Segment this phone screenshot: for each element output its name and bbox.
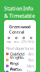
- staticText: Lifts: [21, 40, 26, 44]
- staticText: 9m: [28, 57, 34, 63]
- staticText: Map: [6, 40, 11, 44]
- staticText: 14m: [26, 63, 34, 69]
- staticText: Kings Ave: [10, 61, 19, 71]
- button[interactable]: Oakfield: [4, 51, 36, 57]
- button[interactable]: Harbour: [4, 69, 36, 72]
- staticText: Harbour: [10, 67, 22, 72]
- staticText: Brighton: [10, 55, 24, 65]
- button[interactable]: Map: [5, 37, 12, 44]
- staticText: Greenwood Central: [9, 24, 31, 35]
- staticText: Next departures: [6, 46, 34, 51]
- button[interactable]: Brighton: [4, 57, 36, 63]
- button[interactable]: Kings Ave: [4, 63, 36, 69]
- staticText: Oakfield: [10, 51, 24, 57]
- staticText: 21m: [26, 69, 34, 72]
- staticText: Station Info: [4, 5, 33, 12]
- staticText: & Timetable: [4, 12, 35, 19]
- button[interactable]: Lifts: [20, 37, 27, 44]
- staticText: Help: [28, 40, 35, 44]
- button[interactable]: Help: [28, 37, 35, 44]
- staticText: Exits: [14, 40, 19, 44]
- staticText: 4m: [28, 51, 34, 57]
- button[interactable]: Exits: [13, 37, 20, 44]
